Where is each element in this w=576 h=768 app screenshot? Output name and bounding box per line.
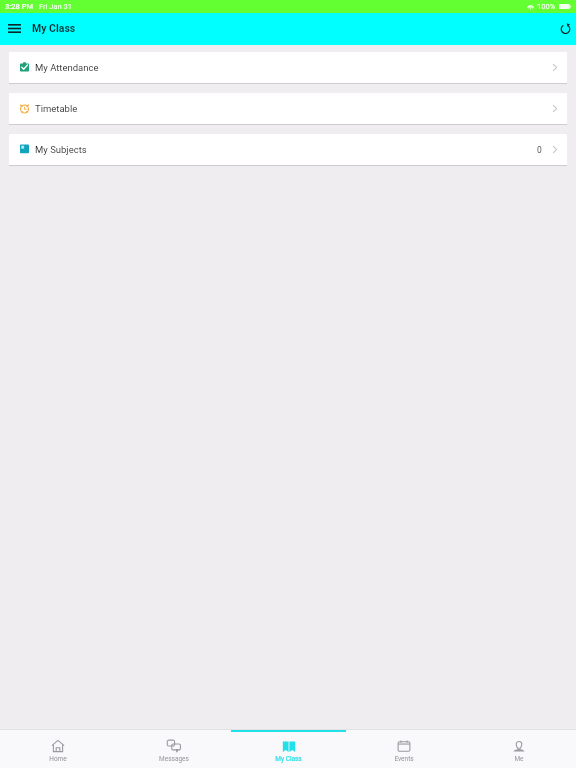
- staticText: Fri Jan 31: [39, 2, 72, 11]
- button[interactable]: My Class: [231, 730, 346, 768]
- staticText: 0: [537, 145, 542, 155]
- staticText: My Class: [275, 755, 302, 763]
- button[interactable]: Timetable: [9, 93, 567, 125]
- staticText: My Attendance: [35, 62, 99, 73]
- button[interactable]: Me: [461, 730, 576, 768]
- staticText: Home: [49, 755, 67, 763]
- staticText: My Class: [32, 22, 76, 34]
- staticText: Me: [514, 755, 524, 763]
- button[interactable]: Events: [346, 730, 461, 768]
- button[interactable]: Menu: [2, 16, 26, 40]
- staticText: 3:28 PM: [5, 2, 34, 11]
- staticText: Events: [394, 755, 414, 763]
- button[interactable]: My Subjects: [9, 134, 567, 166]
- staticText: Messages: [159, 755, 189, 763]
- staticText: My Subjects: [35, 144, 87, 155]
- staticText: Timetable: [35, 103, 78, 114]
- button[interactable]: Refresh: [554, 17, 576, 39]
- button[interactable]: Home: [0, 730, 116, 768]
- button[interactable]: My Attendance: [9, 52, 567, 84]
- staticText: 100%: [537, 2, 556, 11]
- button[interactable]: Messages: [116, 730, 231, 768]
